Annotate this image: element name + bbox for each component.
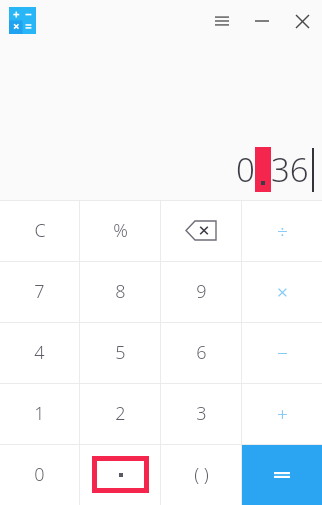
staticText: 3 bbox=[196, 401, 207, 426]
staticText: 9 bbox=[196, 279, 207, 304]
button[interactable]: − bbox=[242, 322, 322, 383]
button[interactable]: 8 bbox=[80, 261, 160, 322]
staticText: 36 bbox=[271, 147, 309, 192]
button[interactable]: 2 bbox=[80, 383, 160, 444]
staticText: 8 bbox=[115, 279, 126, 304]
button[interactable] bbox=[80, 444, 160, 505]
staticText: C bbox=[34, 218, 46, 243]
staticText: 7 bbox=[34, 279, 45, 304]
button[interactable]: 0 bbox=[0, 444, 79, 505]
staticText: 0 bbox=[34, 462, 45, 487]
button[interactable]: 4 bbox=[0, 322, 79, 383]
button[interactable] bbox=[242, 444, 322, 505]
staticText: 1 bbox=[34, 401, 45, 426]
button[interactable]: Backspace bbox=[161, 200, 241, 261]
button[interactable]: Calculator bbox=[9, 7, 36, 34]
button[interactable]: Menu bbox=[206, 5, 238, 37]
button[interactable]: 6 bbox=[161, 322, 241, 383]
other: Backspace bbox=[186, 221, 216, 240]
staticText: − bbox=[277, 340, 288, 366]
button[interactable]: Minimize bbox=[246, 5, 278, 37]
button[interactable]: 9 bbox=[161, 261, 241, 322]
button[interactable]: × bbox=[242, 261, 322, 322]
staticText: × bbox=[277, 279, 288, 305]
staticText: ÷ bbox=[277, 218, 288, 244]
button[interactable]: ( ) bbox=[161, 444, 241, 505]
staticText: 2 bbox=[115, 401, 126, 426]
button[interactable]: + bbox=[242, 383, 322, 444]
staticText: 4 bbox=[34, 340, 45, 365]
button[interactable]: 5 bbox=[80, 322, 160, 383]
button[interactable]: % bbox=[80, 200, 160, 261]
button[interactable]: 7 bbox=[0, 261, 79, 322]
staticText: 6 bbox=[196, 340, 207, 365]
button[interactable]: 1 bbox=[0, 383, 79, 444]
staticText: 5 bbox=[115, 340, 126, 365]
button[interactable]: C bbox=[0, 200, 79, 261]
staticText: 0 bbox=[236, 147, 255, 192]
button[interactable]: ÷ bbox=[242, 200, 322, 261]
button[interactable]: Close bbox=[286, 5, 318, 37]
staticText: + bbox=[277, 401, 288, 427]
staticText: % bbox=[113, 218, 128, 243]
button[interactable]: 3 bbox=[161, 383, 241, 444]
staticText: ( ) bbox=[194, 462, 209, 487]
